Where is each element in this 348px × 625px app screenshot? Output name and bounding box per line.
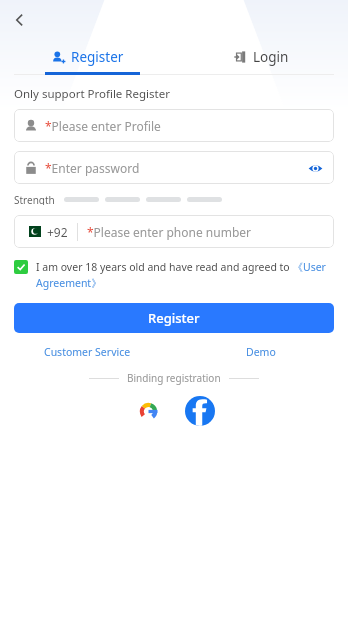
staticText: Customer Service (44, 345, 131, 359)
staticText: Demo (246, 345, 276, 359)
staticText: *Please enter phone number (87, 224, 251, 240)
button[interactable]: Back (4, 4, 36, 36)
staticText: *Please enter Profile (45, 118, 161, 134)
staticText: Only support Profile Register (14, 86, 170, 102)
button[interactable]: Demo (174, 343, 348, 361)
button[interactable]: Register (0, 42, 174, 72)
button[interactable]: Sign in with Google (133, 396, 163, 426)
button[interactable]: Show password (302, 155, 328, 181)
staticText: *Enter password (45, 160, 140, 176)
button[interactable]: I am over 18 years old and have read and… (14, 260, 334, 290)
button[interactable]: *Enter password (14, 151, 334, 184)
staticText: I am over 18 years old and have read and… (36, 260, 334, 290)
staticText: Strength (14, 193, 55, 205)
button[interactable]: Register (14, 303, 334, 333)
button[interactable]: Customer Service (0, 343, 174, 361)
staticText: +92 (47, 224, 68, 240)
staticText: Binding registration (127, 371, 221, 385)
staticText: Login (253, 48, 289, 66)
staticText: Register (71, 48, 124, 66)
button[interactable]: Login (174, 42, 348, 72)
button[interactable]: *Please enter Profile (14, 109, 334, 142)
button[interactable]: Sign in with Facebook (185, 396, 215, 426)
button[interactable]: +92 (14, 215, 334, 248)
staticText: Register (148, 309, 200, 327)
